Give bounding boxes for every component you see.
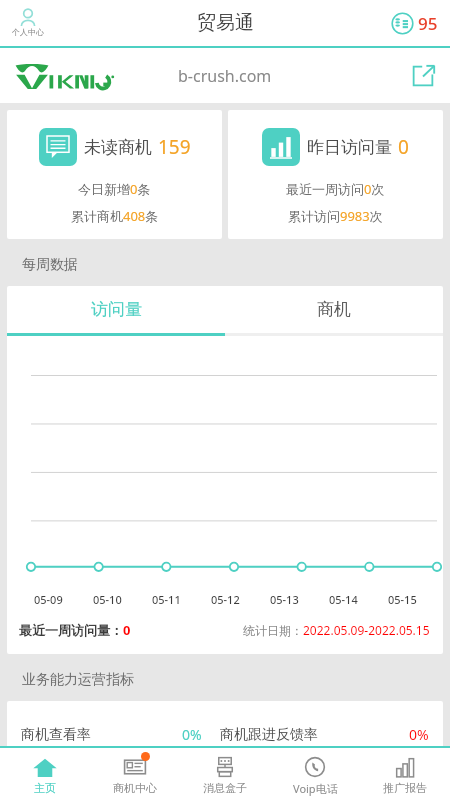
staticText: 0 [398,134,409,160]
staticText: 个人中心 [12,27,44,37]
staticText: 消息盒子 [203,781,247,795]
staticText: 05-13 [270,592,299,607]
staticText: 05-10 [93,592,122,607]
staticText: 05-14 [329,592,358,607]
staticText: 商机跟进反馈率 [220,726,318,744]
button[interactable]: 积分 95 [389,10,440,37]
staticText: 95 [418,12,438,35]
button[interactable]: 昨日访问量 [228,110,443,239]
staticText: 累计商机408条 [71,207,159,225]
staticText: b-crush.com [178,65,272,87]
staticText: 每周数据 [22,256,78,274]
staticText: 05-09 [34,592,63,607]
staticText: 0% [409,725,429,744]
staticText: 0% [182,725,202,744]
staticText: 未读商机 [84,137,152,158]
staticText: 贸易通 [197,11,254,35]
staticText: 访问量 [91,299,142,320]
staticText: 昨日访问量 [307,137,392,158]
staticText: 最近一周访问量：0 [19,621,131,639]
staticText: 累计访问9983次 [288,207,383,225]
staticText: 业务能力运营指标 [22,671,134,689]
button[interactable]: 主页 [0,748,90,800]
button[interactable]: 商机 [225,286,443,333]
button[interactable]: 推广报告 [360,748,450,800]
button[interactable]: 未读商机 [7,110,222,239]
button[interactable]: 个人中心 [8,7,48,39]
staticText: Voip电话 [293,781,338,796]
button[interactable]: Voip电话 [270,748,360,800]
staticText: 商机 [317,299,351,320]
button[interactable]: 访问量 [7,286,225,333]
staticText: 05-12 [211,592,240,607]
button[interactable]: 商机中心 [90,748,180,800]
button[interactable]: 打开网站 [410,63,436,89]
staticText: 主页 [34,781,56,795]
staticText: 商机查看率 [21,726,91,744]
staticText: 159 [158,134,191,160]
staticText: 推广报告 [383,781,427,795]
button[interactable]: 消息盒子 [180,748,270,800]
staticText: 商机中心 [113,781,157,795]
staticText: 05-15 [388,592,417,607]
staticText: 今日新增0条 [78,180,151,198]
staticText: 统计日期：2022.05.09-2022.05.15 [243,622,430,638]
staticText: 最近一周访问0次 [286,180,385,198]
staticText: 05-11 [152,592,181,607]
